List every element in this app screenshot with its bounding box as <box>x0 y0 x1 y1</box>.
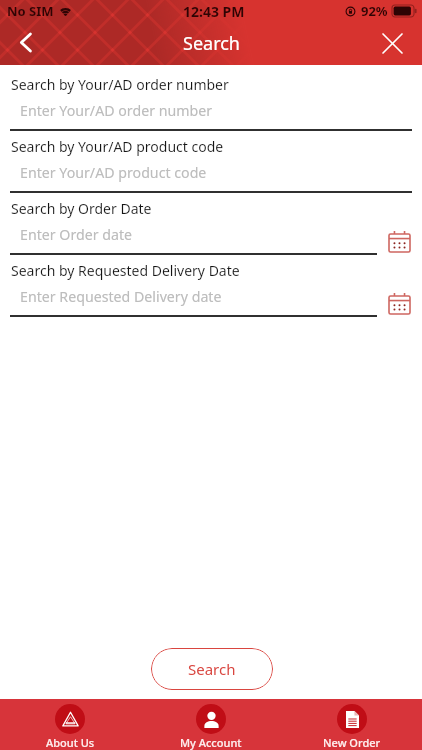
staticText: 12:43 PM <box>183 2 245 21</box>
staticText: Search <box>188 659 236 679</box>
staticText: Enter Order date <box>20 225 133 244</box>
button[interactable]: Back <box>4 22 46 65</box>
staticText: Search by Order Date <box>11 199 152 218</box>
button[interactable]: Search <box>151 648 273 690</box>
staticText: Search <box>183 31 240 56</box>
staticText: New Order <box>323 735 381 750</box>
button[interactable]: Pick date <box>386 228 412 254</box>
button[interactable]: Pick date <box>386 290 412 316</box>
button[interactable]: New Order <box>281 699 422 750</box>
staticText: Enter Requested Delivery date <box>20 287 222 306</box>
button[interactable]: Close <box>371 22 413 65</box>
staticText: 92% <box>361 2 388 20</box>
staticText: Enter Your/AD order number <box>20 101 213 120</box>
staticText: Search by Your/AD order number <box>11 75 229 94</box>
button[interactable]: About Us <box>0 699 140 750</box>
staticText: My Account <box>180 735 242 750</box>
staticText: Enter Your/AD product code <box>20 163 207 182</box>
staticText: Search by Requested Delivery Date <box>11 261 240 280</box>
staticText: About Us <box>46 735 95 750</box>
staticText: No SIM <box>7 2 54 20</box>
staticText: Search by Your/AD product code <box>11 137 224 156</box>
button[interactable]: My Account <box>140 699 281 750</box>
